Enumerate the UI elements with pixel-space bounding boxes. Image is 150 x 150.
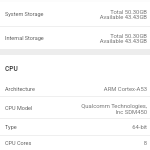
button[interactable]: System Storage (0, 2, 150, 26)
staticText: ARM Cortex-A53 (103, 86, 147, 92)
staticText: System Storage (5, 11, 44, 17)
staticText: Qualcomm Technologies, (81, 103, 147, 110)
staticText: Total 50.30GB (110, 9, 147, 15)
staticText: CPU Model (5, 105, 33, 111)
button[interactable]: Architecture (0, 81, 150, 96)
staticText: CPU Cores (5, 140, 32, 146)
button[interactable]: CPU Model (0, 97, 150, 118)
staticText: 8 (143, 140, 147, 146)
button[interactable]: Type (0, 119, 150, 135)
staticText: 64-bit (132, 124, 147, 130)
staticText: Architecture (5, 86, 35, 92)
staticText: Internal Storage (5, 35, 44, 41)
staticText: Type (5, 124, 17, 130)
staticText: Inc SDM450 (115, 109, 147, 116)
staticText: Available 43.43GB (99, 14, 147, 20)
staticText: CPU (5, 65, 18, 73)
staticText: Total 50.30GB (110, 33, 147, 39)
staticText: Available 43.43GB (99, 38, 147, 44)
button[interactable]: CPU Cores (0, 136, 150, 150)
button[interactable]: Internal Storage (0, 27, 150, 49)
